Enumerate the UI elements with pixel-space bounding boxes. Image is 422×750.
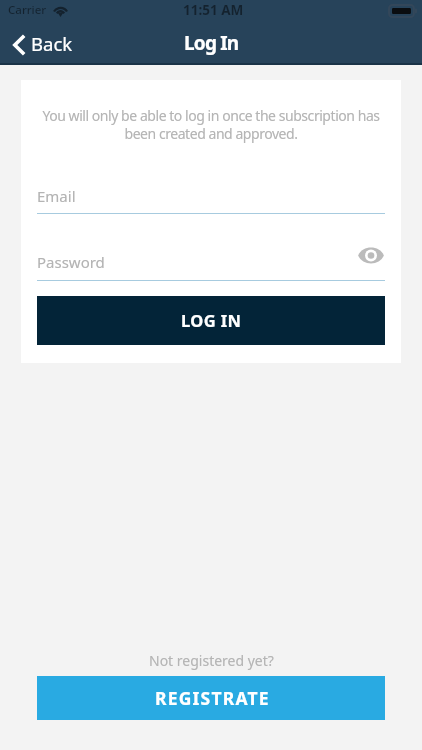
button[interactable]: REGISTRATE [37, 676, 385, 720]
staticText: Email [37, 186, 76, 206]
staticText: Back [31, 31, 73, 56]
staticText: Password [37, 252, 105, 272]
staticText: You will only be able to log in once the… [39, 106, 383, 143]
staticText: LOG IN [181, 309, 242, 331]
button[interactable]: LOG IN [37, 296, 385, 345]
staticText: Carrier [8, 2, 47, 18]
staticText: 11:51 AM [183, 1, 244, 19]
staticText: REGISTRATE [155, 686, 270, 710]
button[interactable]: Show password [357, 244, 385, 266]
button[interactable]: Back [0, 27, 85, 62]
staticText: Not registered yet? [149, 651, 274, 670]
staticText: Log In [184, 30, 239, 56]
